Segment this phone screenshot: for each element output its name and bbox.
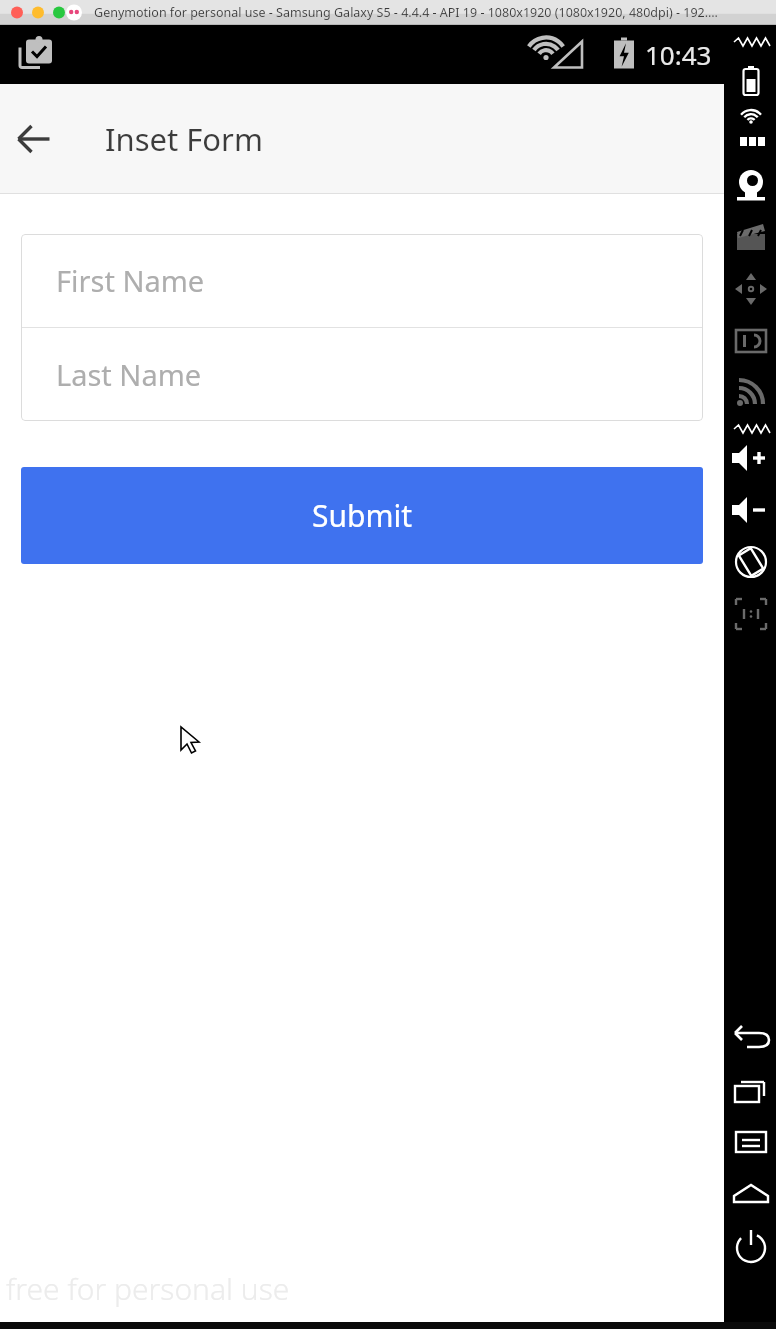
button[interactable]: First Name [21, 234, 703, 327]
button[interactable]: Submit [21, 467, 703, 564]
staticText: Genymotion for personal use - Samsung Ga… [94, 4, 718, 21]
staticText: Inset Form [105, 118, 263, 160]
button[interactable]: Back [8, 113, 60, 165]
staticText: 10:43 [645, 37, 712, 72]
button[interactable]: Last Name [21, 328, 703, 421]
staticText: Last Name [56, 355, 202, 394]
staticText: Submit [312, 495, 413, 536]
staticText: free for personal use [6, 1268, 290, 1309]
staticText: First Name [56, 261, 205, 300]
